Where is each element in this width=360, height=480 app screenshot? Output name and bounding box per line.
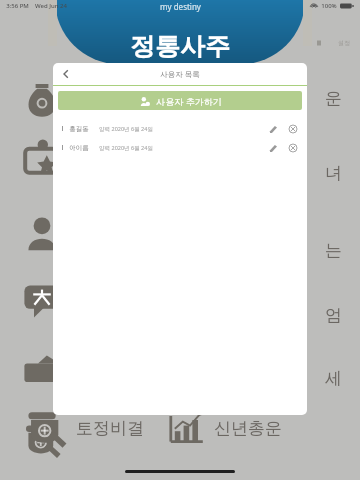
staticText: 홍길동 <box>69 125 89 133</box>
staticText: 신년총운 <box>214 418 282 439</box>
staticText: 사용자 추가하기 <box>156 95 222 107</box>
button[interactable]: Edit <box>266 141 280 155</box>
staticText: Wed Jun 24 <box>35 2 67 10</box>
button[interactable]: 홍길동 <box>53 119 307 138</box>
staticText: 양력 2020년 6월 24일 <box>99 125 153 133</box>
staticText: 설정 <box>338 39 350 47</box>
button[interactable]: Back <box>53 63 79 85</box>
staticText: 3:56 PM <box>6 2 29 10</box>
staticText: 토정비결 <box>76 418 144 439</box>
button[interactable]: 토정비결 <box>24 406 68 450</box>
button[interactable]: Edit <box>266 122 280 136</box>
staticText: my destiny <box>160 1 201 12</box>
staticText: 사용자 목록 <box>160 69 200 79</box>
button[interactable]: 아이름 <box>53 138 307 157</box>
staticText: 양력 2020년 6월 24일 <box>99 144 153 152</box>
staticText: 아이름 <box>69 144 89 152</box>
staticText: 세 <box>325 368 342 389</box>
button[interactable]: Delete <box>286 122 300 136</box>
staticText: 정통사주 <box>130 31 230 62</box>
staticText: 운 <box>325 88 342 109</box>
button[interactable]: Menu <box>314 38 324 48</box>
staticText: 엄 <box>325 305 342 326</box>
button[interactable]: Delete <box>286 141 300 155</box>
button[interactable]: 신년총운 <box>166 408 206 448</box>
staticText: 100% <box>321 2 337 10</box>
button[interactable]: 사용자 추가하기 <box>58 91 302 110</box>
staticText: 녀 <box>325 163 342 184</box>
staticText: 는 <box>325 240 342 261</box>
